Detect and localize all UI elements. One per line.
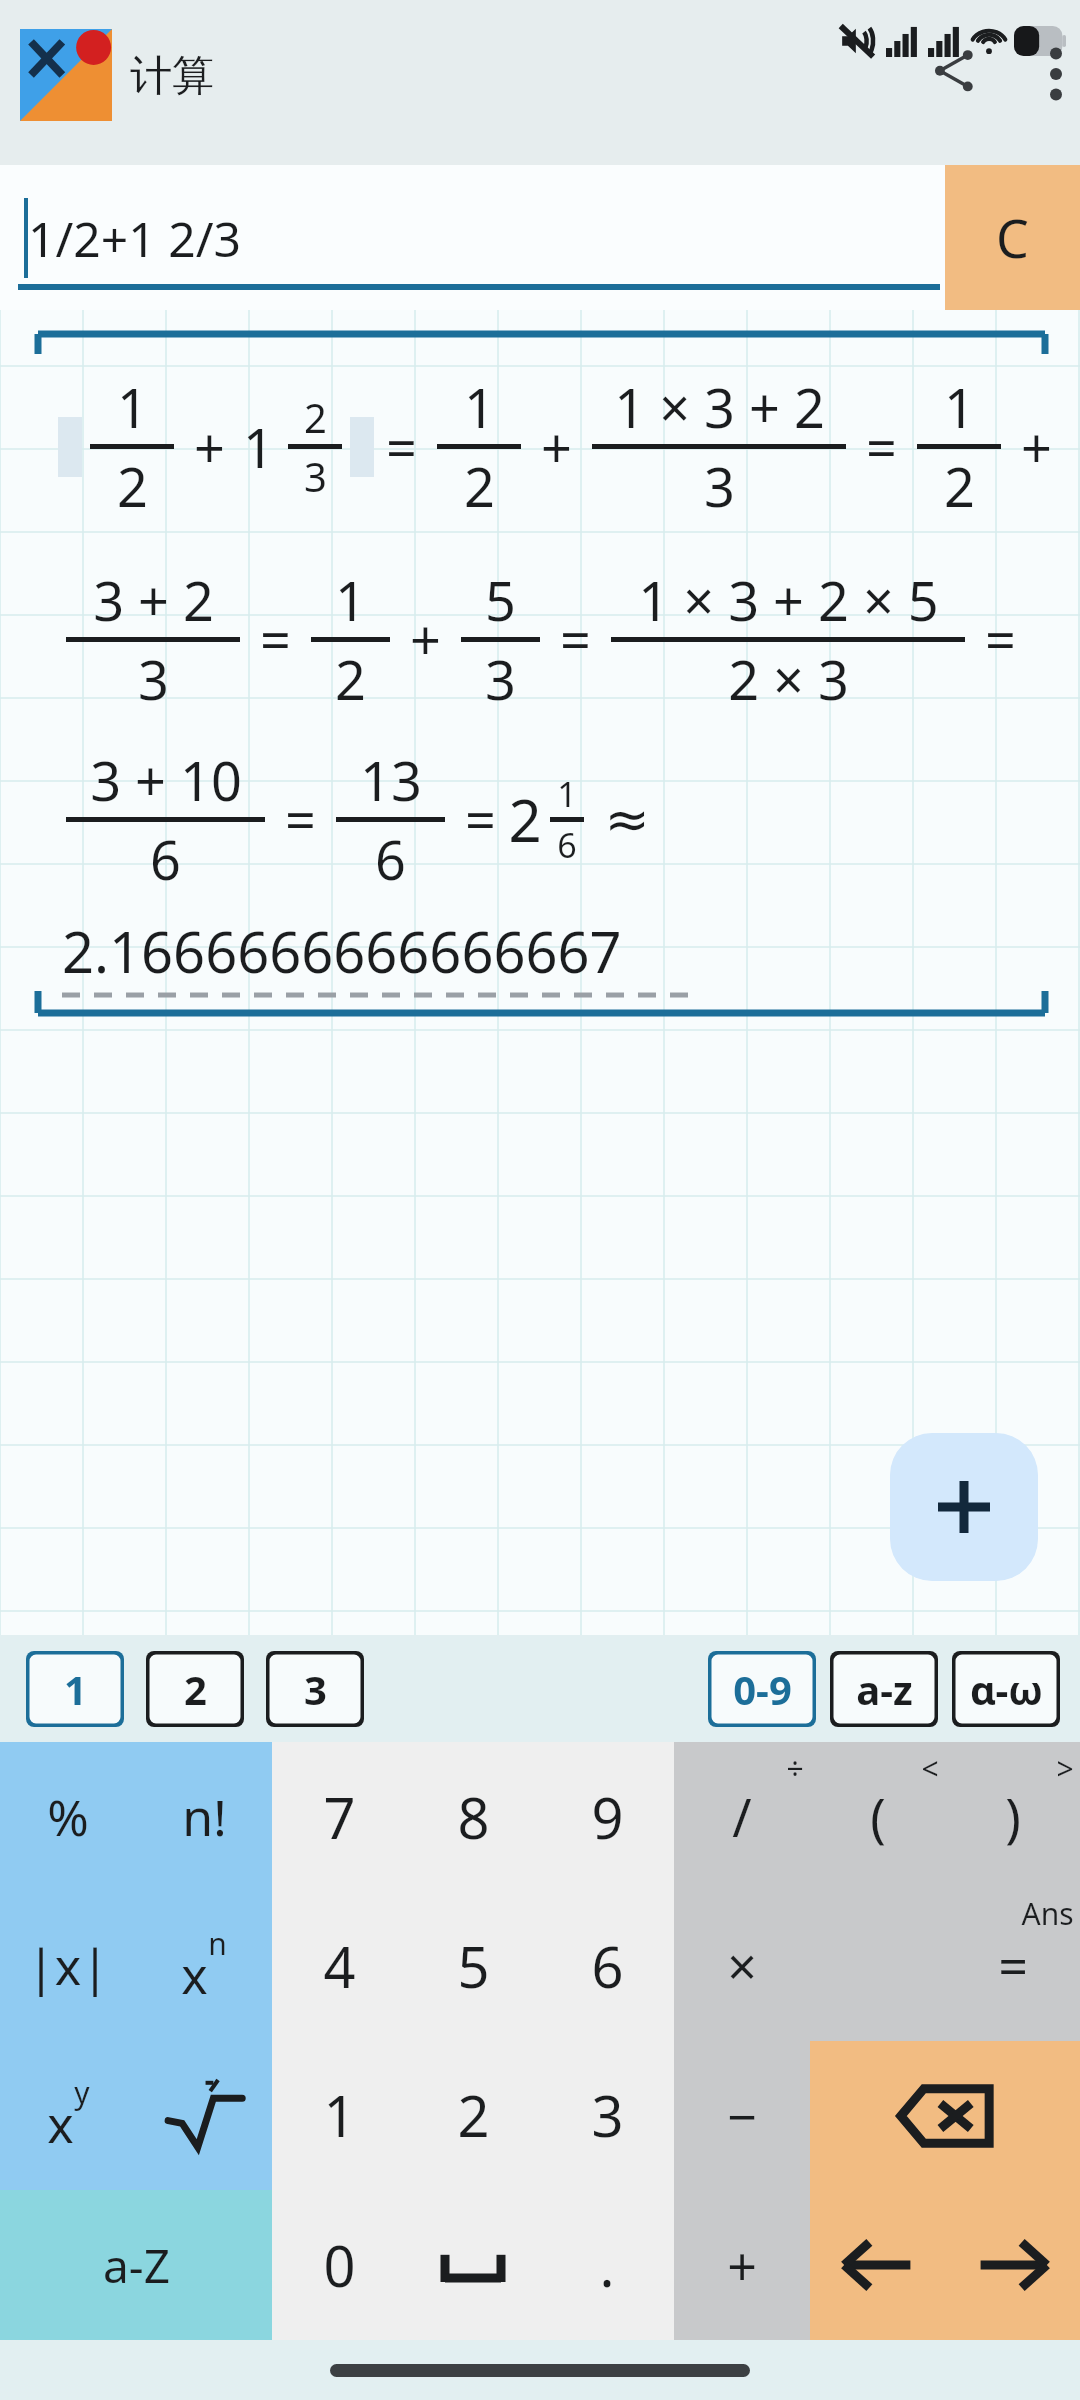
staticText: 计算 (130, 50, 214, 103)
button[interactable]: . (540, 2190, 674, 2340)
staticText: = (998, 1930, 1028, 2001)
staticText: 0 (323, 2227, 356, 2303)
staticText: 1 (243, 410, 274, 484)
staticText: 2 (457, 2077, 490, 2153)
button[interactable]: ) (945, 1742, 1080, 1891)
staticText: 2 (944, 449, 975, 523)
staticText: x (181, 1941, 208, 2009)
button[interactable]: 4 (272, 1891, 406, 2040)
button[interactable]: % (0, 1742, 136, 1891)
staticText: = (866, 410, 897, 484)
button[interactable]: 1 (26, 1651, 124, 1727)
button[interactable] (406, 2190, 540, 2340)
button[interactable]: × (674, 1891, 810, 2040)
staticText: |x| (27, 1932, 109, 2000)
staticText: 2 × 3 (728, 642, 849, 716)
staticText: 3 (138, 642, 169, 716)
staticText: 7 (323, 1779, 356, 1855)
staticText: 1 × 3 + 2 (614, 370, 825, 444)
staticText: a-Z (103, 2234, 170, 2297)
staticText: 6 (150, 822, 181, 896)
staticText: ɑ-ω (970, 1662, 1043, 1716)
button[interactable]: 0-9 (708, 1651, 816, 1727)
staticText: + (1021, 410, 1052, 484)
staticText: − (727, 2080, 757, 2151)
staticText: ( (870, 1781, 886, 1852)
staticText: 6 (557, 822, 577, 868)
staticText: 3 (704, 449, 735, 523)
staticText: = (465, 782, 496, 856)
staticText: 1 (64, 1662, 87, 1716)
button[interactable]: 9 (540, 1742, 674, 1891)
button[interactable]: ɑ-ω (952, 1651, 1060, 1727)
button[interactable]: = (945, 1891, 1080, 2040)
staticText: 1 (117, 370, 148, 444)
button[interactable]: x (0, 2040, 136, 2190)
staticText: 4 (323, 1928, 356, 2004)
button[interactable]: n! (136, 1742, 272, 1891)
staticText: 5 (485, 563, 516, 637)
button[interactable]: Right (945, 2190, 1080, 2340)
staticText: = (285, 782, 316, 856)
staticText: 1 (557, 771, 577, 817)
button[interactable]: a-z (830, 1651, 938, 1727)
button[interactable]: ( (810, 1742, 945, 1891)
staticText: 2.1666666666666667 (62, 913, 622, 989)
staticText: 2 (184, 1662, 207, 1716)
staticText: 3 + 2 (93, 563, 214, 637)
staticText: + (727, 2230, 757, 2301)
button[interactable]: 8 (406, 1742, 540, 1891)
staticText: 2 (304, 390, 327, 444)
staticText: 6 (591, 1928, 624, 2004)
button[interactable]: 2 (146, 1651, 244, 1727)
staticText: 2 (335, 642, 366, 716)
button[interactable]: 0 (272, 2190, 406, 2340)
staticText: x (47, 2090, 74, 2158)
staticText: ) (1005, 1781, 1021, 1852)
button[interactable]: a-Z (0, 2190, 272, 2340)
button[interactable]: 5 (406, 1891, 540, 2040)
staticText: 0-9 (733, 1662, 792, 1716)
staticText: Ans (1021, 1893, 1074, 1934)
button[interactable]: − (674, 2040, 809, 2190)
staticText: 13 (360, 743, 422, 817)
button[interactable]: 3 (266, 1651, 364, 1727)
staticText: 2 (464, 449, 495, 523)
button[interactable]: Backspace (810, 2041, 1080, 2190)
staticText: ÷ (786, 1748, 804, 1789)
staticText: 2 (117, 449, 148, 523)
staticText: 3 (304, 1662, 327, 1716)
staticText: 1 × 3 + 2 × 5 (638, 563, 939, 637)
button[interactable]: Add (890, 1433, 1038, 1581)
staticText: 1 (335, 563, 366, 637)
button[interactable]: x (136, 1891, 272, 2040)
staticText: = (386, 410, 417, 484)
button[interactable]: 3 (540, 2040, 674, 2190)
button[interactable] (136, 2040, 272, 2190)
staticText: 5 (457, 1928, 490, 2004)
button[interactable]: 2 (406, 2040, 540, 2190)
staticText: = (560, 602, 591, 676)
staticText: + (541, 410, 572, 484)
button[interactable]: Left (810, 2190, 945, 2340)
button[interactable]: 1 (272, 2040, 406, 2190)
staticText: 3 (591, 2077, 624, 2153)
button[interactable]: 6 (540, 1891, 674, 2040)
staticText: 2 (508, 780, 542, 859)
staticText: 6 (375, 822, 406, 896)
button[interactable]: 7 (272, 1742, 406, 1891)
staticText: 9 (591, 1779, 624, 1855)
staticText: < (921, 1748, 939, 1789)
button[interactable]: 1/2+1 2/3 (0, 165, 945, 310)
staticText: = (985, 602, 1016, 676)
staticText: . (599, 2227, 615, 2303)
staticText: y (74, 2072, 90, 2113)
staticText: 1 (323, 2077, 356, 2153)
button[interactable]: + (674, 2190, 809, 2340)
staticText: a-z (856, 1662, 913, 1716)
staticText: + (194, 410, 225, 484)
button[interactable]: C (945, 165, 1080, 310)
button[interactable]: |x| (0, 1891, 136, 2040)
button[interactable]: / (674, 1742, 810, 1891)
staticText: × (727, 1930, 757, 2001)
